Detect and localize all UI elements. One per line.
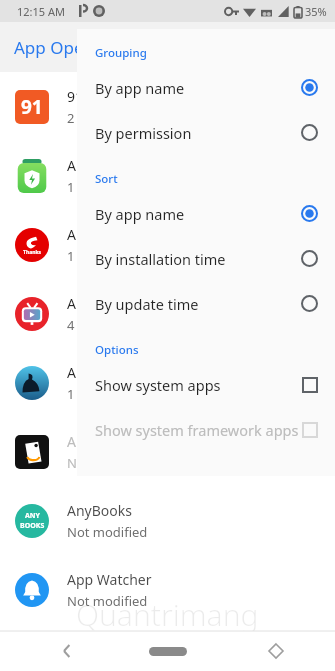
staticText: 1 operation <box>67 178 138 196</box>
staticText: 35% <box>305 4 327 19</box>
staticText: Grouping <box>95 45 147 61</box>
staticText: 91 <box>21 94 43 120</box>
staticText: By installation time <box>95 249 301 269</box>
button[interactable]: By app name <box>77 191 335 236</box>
staticText: By update time <box>95 294 301 314</box>
staticText: Not modified <box>67 523 148 541</box>
staticText: AnyBooks <box>67 501 132 520</box>
button[interactable]: Show system apps <box>77 362 335 407</box>
staticText: Quantrimang <box>76 594 259 635</box>
staticText: Airtel Xstream <box>67 294 160 313</box>
staticText: ANY <box>25 511 40 521</box>
staticText: By permission <box>95 123 301 143</box>
button[interactable]: Home <box>138 638 198 664</box>
button[interactable]: Back <box>50 634 84 668</box>
staticText: By app name <box>95 204 301 224</box>
button[interactable]: Thanks <box>0 210 335 279</box>
staticText: App Operations <box>14 36 140 59</box>
button[interactable]: Ampere Battery <box>0 141 335 210</box>
staticText: Ampere Battery <box>67 156 171 175</box>
button[interactable]: Airtel Xstream <box>0 279 335 348</box>
staticText: 4 operations <box>67 316 144 334</box>
staticText: Airtel Thanks <box>67 225 153 244</box>
button[interactable]: App Watcher <box>0 555 335 624</box>
button[interactable]: Amazon Shopping <box>0 417 335 486</box>
button[interactable]: ANY <box>0 486 335 555</box>
staticText: App Watcher <box>67 570 152 589</box>
staticText: 12:15 AM <box>17 4 65 19</box>
staticText: 91 Assistant <box>67 87 146 106</box>
staticText: By app name <box>95 78 301 98</box>
staticText: Amazon Kindle <box>67 363 166 382</box>
button[interactable]: By update time <box>77 281 335 326</box>
staticText: Options <box>95 342 139 358</box>
staticText: 2 operations <box>67 109 144 127</box>
staticText: Show system apps <box>95 375 302 395</box>
button[interactable]: By permission <box>77 110 335 155</box>
staticText: Amazon Shopping <box>67 432 188 451</box>
staticText: Not modified <box>67 454 148 472</box>
button[interactable]: Amazon Kindle <box>0 348 335 417</box>
staticText: Not modified <box>67 592 148 610</box>
staticText: Sort <box>95 171 118 187</box>
staticText: BOOKS <box>20 521 45 531</box>
staticText: 1 operation <box>67 385 138 403</box>
button[interactable]: By installation time <box>77 236 335 281</box>
button[interactable]: Rotate screen <box>259 634 293 668</box>
staticText: Thanks <box>23 249 41 256</box>
button[interactable]: Show system framework apps <box>77 407 335 452</box>
button[interactable]: 91 <box>0 72 335 141</box>
staticText: Show system framework apps <box>95 420 302 440</box>
button[interactable]: By app name <box>77 65 335 110</box>
staticText: 1 operation <box>67 247 138 265</box>
